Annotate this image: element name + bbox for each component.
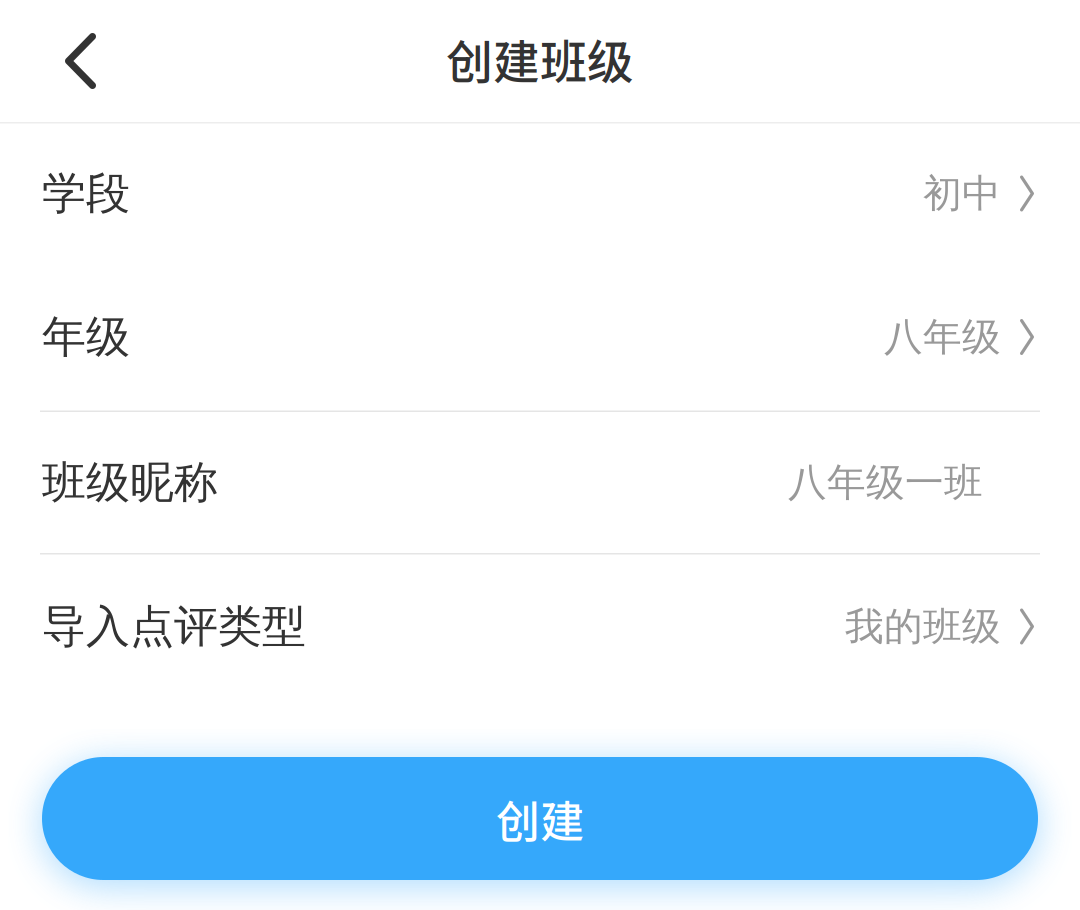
staticText: 八年级 [884, 313, 1001, 361]
button[interactable]: 学段 [0, 123, 1080, 263]
button[interactable]: Back [0, 0, 161, 122]
staticText: 学段 [42, 166, 130, 220]
staticText: 创建班级 [446, 25, 634, 93]
button[interactable]: 年级 [0, 263, 1080, 410]
button[interactable]: 创建 [42, 757, 1038, 880]
staticText: 创建 [496, 787, 584, 850]
staticText: 初中 [923, 170, 1001, 217]
staticText: 年级 [42, 310, 130, 364]
staticText: 导入点评类型 [42, 599, 306, 653]
button[interactable]: 导入点评类型 [0, 554, 1080, 698]
staticText: 八年级一班 [788, 459, 983, 506]
staticText: 我的班级 [845, 603, 1001, 650]
button[interactable]: 班级昵称 [0, 412, 1080, 553]
staticText: 班级昵称 [42, 455, 218, 509]
